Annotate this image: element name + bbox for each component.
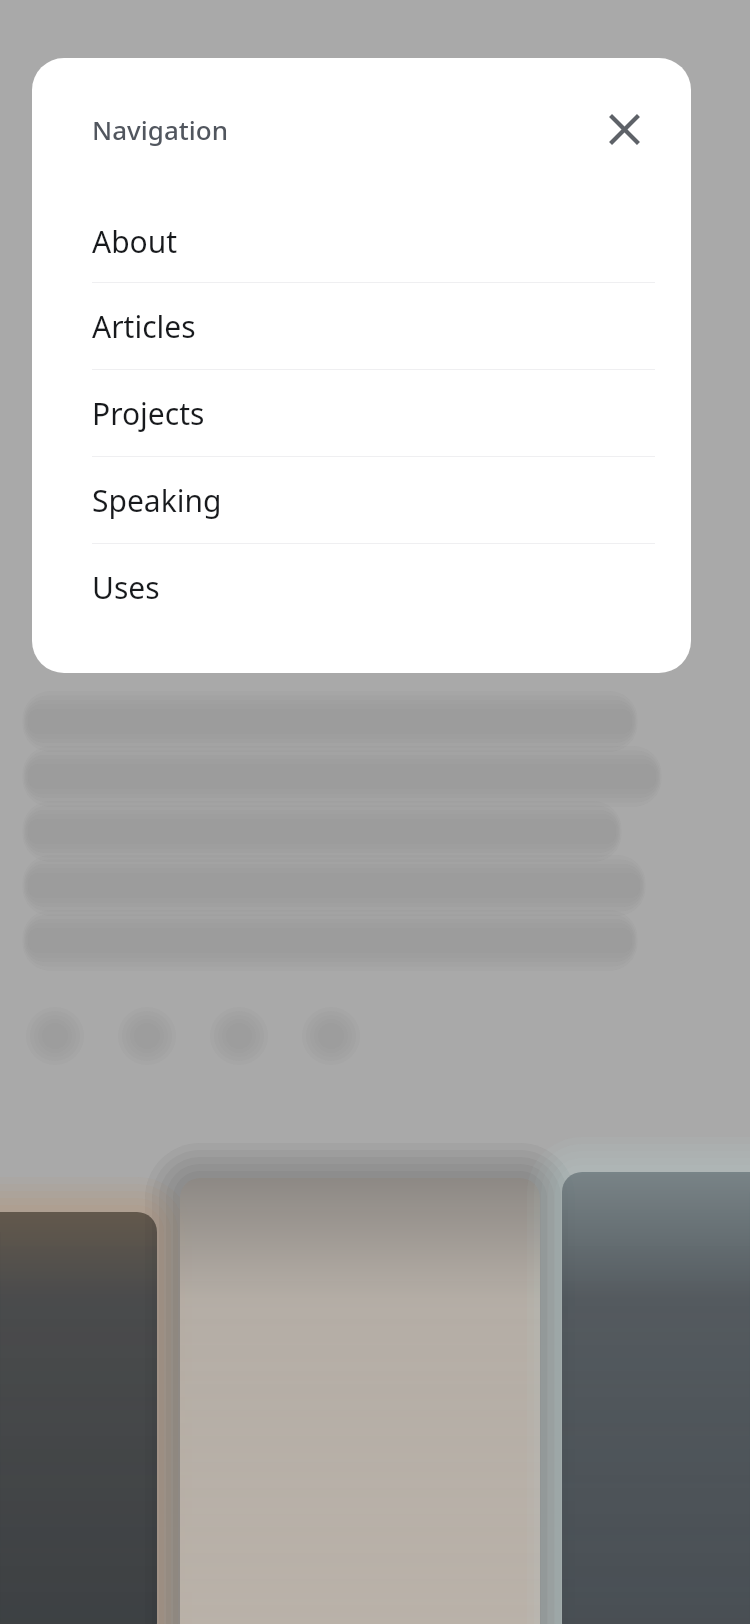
staticText: Navigation xyxy=(92,112,228,147)
button[interactable]: About xyxy=(32,200,691,282)
staticText: Speaking xyxy=(92,480,222,521)
button[interactable]: Articles xyxy=(32,283,691,369)
button[interactable]: Projects xyxy=(32,370,691,456)
button[interactable]: Uses xyxy=(32,544,691,630)
staticText: About xyxy=(92,221,178,262)
button[interactable]: Close navigation xyxy=(597,102,651,156)
staticText: Projects xyxy=(92,393,205,434)
button[interactable]: Speaking xyxy=(32,457,691,543)
staticText: Uses xyxy=(92,567,160,608)
staticText: Articles xyxy=(92,306,196,347)
